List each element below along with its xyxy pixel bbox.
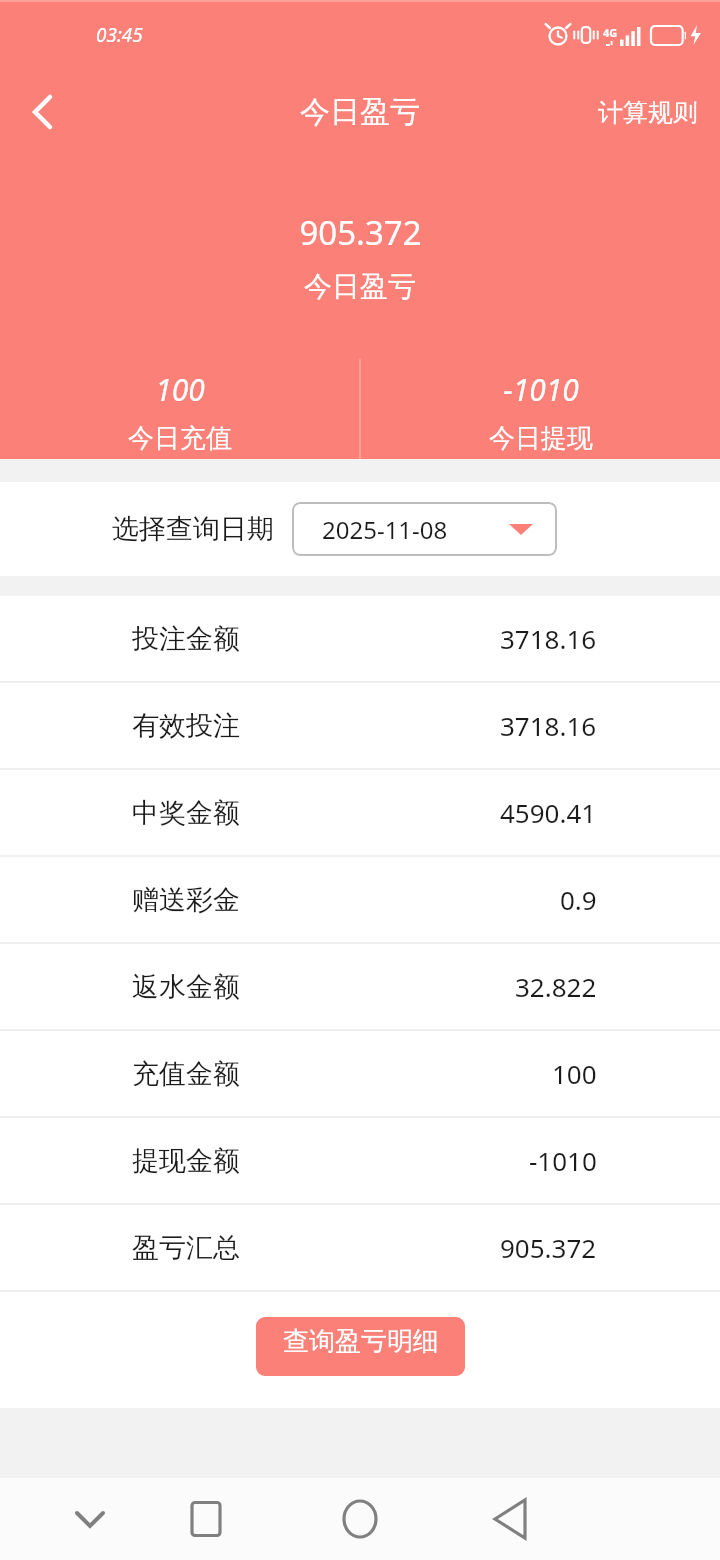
staticText: 盈亏汇总 <box>132 1231 240 1265</box>
staticText: 905.372 <box>299 210 422 255</box>
button[interactable]: 100 <box>0 359 359 459</box>
staticText: 0.9 <box>560 882 597 917</box>
staticText: 3718.16 <box>500 708 597 743</box>
button[interactable]: Back <box>18 88 66 136</box>
staticText: 100 <box>155 369 205 410</box>
button[interactable]: 2025-11-08 <box>292 502 557 556</box>
staticText: 32.822 <box>515 969 597 1004</box>
button[interactable]: 充值金额 <box>0 1031 720 1116</box>
staticText: 查询盈亏明细 <box>283 1325 439 1358</box>
button[interactable]: 盈亏汇总 <box>0 1205 720 1290</box>
staticText: 投注金额 <box>132 622 240 656</box>
staticText: 03:45 <box>96 22 143 48</box>
button[interactable]: 提现金额 <box>0 1118 720 1203</box>
staticText: 计算规则 <box>598 97 698 128</box>
staticText: 4590.41 <box>500 795 597 830</box>
button[interactable]: 返水金额 <box>0 944 720 1029</box>
staticText: 今日充值 <box>128 422 232 455</box>
staticText: 今日盈亏 <box>300 93 420 131</box>
button[interactable]: Recent apps <box>178 1491 234 1547</box>
button[interactable]: 投注金额 <box>0 596 720 681</box>
staticText: 返水金额 <box>132 970 240 1004</box>
staticText: 提现金额 <box>132 1144 240 1178</box>
button[interactable]: 赠送彩金 <box>0 857 720 942</box>
staticText: 2025-11-08 <box>322 513 448 546</box>
staticText: 今日盈亏 <box>304 269 416 304</box>
staticText: 赠送彩金 <box>132 883 240 917</box>
button[interactable]: 查询盈亏明细 <box>256 1317 465 1376</box>
button[interactable]: Hide keyboard <box>62 1491 118 1547</box>
button[interactable]: Home <box>332 1491 388 1547</box>
button[interactable]: Back <box>484 1491 540 1547</box>
button[interactable]: 中奖金额 <box>0 770 720 855</box>
staticText: -1010 <box>503 369 579 410</box>
staticText: 充值金额 <box>132 1057 240 1091</box>
staticText: 选择查询日期 <box>112 512 274 546</box>
button[interactable]: -1010 <box>361 359 720 459</box>
staticText: 4G <box>603 25 618 40</box>
staticText: 有效投注 <box>132 709 240 743</box>
staticText: 3718.16 <box>500 621 597 656</box>
staticText: 中奖金额 <box>132 796 240 830</box>
staticText: 100 <box>552 1056 597 1091</box>
staticText: 今日提现 <box>489 422 593 455</box>
staticText: 905.372 <box>500 1230 597 1265</box>
staticText: -1010 <box>529 1143 597 1178</box>
button[interactable]: 有效投注 <box>0 683 720 768</box>
button[interactable]: 计算规则 <box>598 97 698 128</box>
